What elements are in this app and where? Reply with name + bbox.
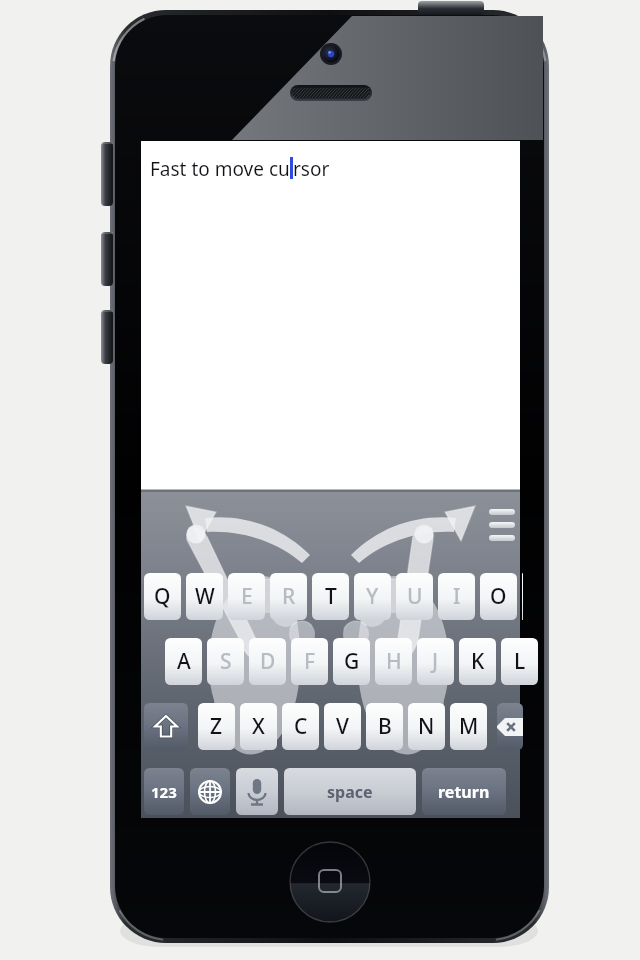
staticText: Y <box>366 582 379 611</box>
button[interactable]: X <box>240 703 277 750</box>
button[interactable]: T <box>312 573 349 620</box>
staticText: B <box>378 712 392 741</box>
button[interactable]: I <box>438 573 475 620</box>
staticText: Q <box>154 582 171 611</box>
staticText: Fast to move cu <box>150 156 290 182</box>
staticText: S <box>220 647 232 676</box>
button[interactable]: F <box>291 638 328 685</box>
staticText: O <box>490 582 507 611</box>
button[interactable]: N <box>408 703 445 750</box>
staticText: C <box>294 712 308 741</box>
button[interactable]: Backspace <box>497 703 523 750</box>
staticText: H <box>386 647 402 676</box>
button[interactable]: return <box>422 768 506 815</box>
staticText: U <box>407 582 423 611</box>
button[interactable]: U <box>396 573 433 620</box>
staticText: D <box>260 647 276 676</box>
staticText: T <box>325 582 337 611</box>
staticText: R <box>282 582 296 611</box>
staticText: L <box>514 647 526 676</box>
staticText: M <box>459 712 479 741</box>
staticText: P <box>522 582 523 611</box>
staticText: rsor <box>293 156 330 182</box>
button[interactable]: O <box>480 573 517 620</box>
staticText: V <box>336 712 349 741</box>
button[interactable]: V <box>324 703 361 750</box>
button[interactable]: Z <box>198 703 235 750</box>
button[interactable]: M <box>450 703 487 750</box>
staticText: Z <box>210 712 223 741</box>
button[interactable]: Shift <box>144 703 188 750</box>
button[interactable]: K <box>459 638 496 685</box>
button[interactable]: Dictate <box>236 768 278 815</box>
button[interactable]: R <box>270 573 307 620</box>
staticText: F <box>304 647 316 676</box>
staticText: 123 <box>151 782 177 802</box>
button[interactable]: G <box>333 638 370 685</box>
button[interactable]: H <box>375 638 412 685</box>
button[interactable]: space <box>284 768 416 815</box>
button[interactable]: Change keyboard <box>190 768 230 815</box>
button[interactable]: Y <box>354 573 391 620</box>
button[interactable]: Q <box>144 573 181 620</box>
staticText: W <box>195 582 215 611</box>
button[interactable]: E <box>228 573 265 620</box>
staticText: J <box>432 647 439 676</box>
staticText: A <box>177 647 191 676</box>
staticText: K <box>471 647 485 676</box>
button[interactable]: D <box>249 638 286 685</box>
button[interactable]: 123 <box>144 768 184 815</box>
button[interactable]: A <box>165 638 202 685</box>
staticText: G <box>344 647 360 676</box>
staticText: I <box>453 582 461 611</box>
button[interactable]: J <box>417 638 454 685</box>
button[interactable]: W <box>186 573 223 620</box>
staticText: return <box>438 781 490 803</box>
button[interactable]: B <box>366 703 403 750</box>
button[interactable]: S <box>207 638 244 685</box>
staticText: space <box>327 781 373 803</box>
staticText: E <box>241 582 253 611</box>
button[interactable]: P <box>522 573 523 620</box>
button[interactable]: L <box>501 638 538 685</box>
button[interactable]: C <box>282 703 319 750</box>
staticText: X <box>252 712 265 741</box>
staticText: N <box>418 712 435 741</box>
